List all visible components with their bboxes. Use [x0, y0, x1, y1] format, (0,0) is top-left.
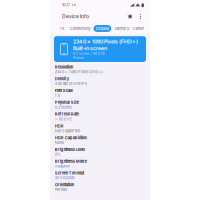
staticText: 2340 x 1080 Pixels (FHD+)	[55, 69, 103, 74]
staticText: 1.0	[55, 93, 60, 98]
button[interactable]: Favorite	[126, 12, 134, 21]
staticText: Resolution	[55, 65, 73, 69]
staticText: 480 dpi (XXHDPI)	[55, 81, 87, 86]
staticText: HDR	[55, 123, 64, 128]
button[interactable]: Orientation	[50, 181, 150, 193]
button[interactable]: Physical Size	[50, 99, 150, 111]
button[interactable]: Brightness Mode	[50, 158, 150, 169]
button[interactable]: Memory	[112, 25, 131, 32]
staticText: 10:27	[62, 3, 70, 7]
button[interactable]: Density	[50, 75, 150, 87]
staticText: 6.3 inches	[55, 105, 72, 110]
staticText: Camer	[133, 26, 144, 31]
staticText: ~ 60.0 Hz	[55, 117, 72, 121]
staticText: HDR Capabilities	[55, 135, 87, 140]
staticText: Brightness Level	[55, 147, 85, 152]
staticText: Adaptive	[55, 164, 70, 168]
button[interactable]: HDR Capabilities	[50, 134, 150, 146]
button[interactable]: Brightness Level	[50, 146, 150, 158]
staticText: Refresh Rate	[55, 112, 79, 117]
staticText: Memory	[115, 26, 129, 31]
staticText: Portrait	[55, 187, 67, 192]
button[interactable]: More options	[138, 12, 143, 21]
staticText: Screen Timeout	[55, 171, 84, 175]
button[interactable]: HDR	[50, 122, 150, 134]
staticText: Portrait	[73, 56, 84, 60]
staticText: Not Supported	[55, 128, 80, 133]
button[interactable]: Connectivity	[67, 25, 93, 32]
button[interactable]: Refresh Rate	[50, 111, 150, 122]
staticText: 6.3 inches | 60.0 Hz	[73, 52, 105, 56]
staticText: Brightness Mode	[55, 159, 87, 164]
staticText: Display	[96, 26, 109, 31]
staticText: Physical Size	[55, 100, 79, 105]
staticText: Device Info	[62, 13, 89, 19]
staticText: 30 Seconds	[55, 175, 75, 180]
staticText: Connectivity	[69, 26, 90, 31]
button[interactable]: Font Scale	[50, 87, 150, 99]
button[interactable]: Display	[93, 25, 111, 32]
staticText: rk	[60, 26, 64, 31]
button[interactable]: Resolution	[50, 63, 150, 75]
staticText: None	[55, 140, 64, 145]
staticText: 0%	[55, 152, 61, 157]
staticText: Font Scale	[55, 88, 73, 93]
staticText: Density	[55, 76, 69, 81]
staticText: Orientation	[55, 182, 74, 187]
staticText: Built-in screen	[73, 45, 107, 51]
button[interactable]: Screen Timeout	[50, 169, 150, 181]
staticText: 2340 x 1080 Pixels (FHD+)	[73, 38, 138, 45]
